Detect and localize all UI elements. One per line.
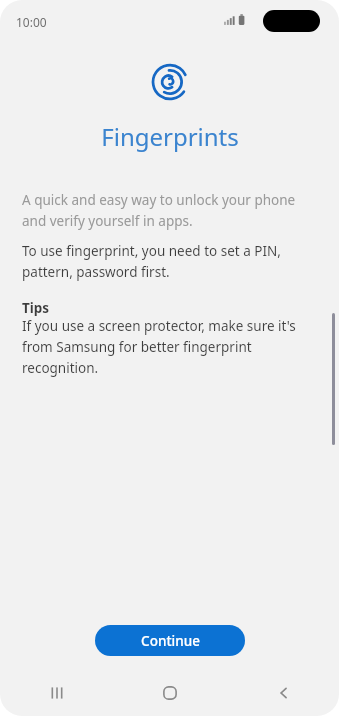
staticText: A quick and easy way to unlock your phon… xyxy=(22,191,311,230)
button[interactable]: Home xyxy=(113,670,226,716)
staticText: 10:00 xyxy=(16,14,47,30)
button[interactable]: Back xyxy=(226,670,339,716)
staticText: Tips xyxy=(22,299,50,317)
button[interactable]: Continue xyxy=(95,625,245,656)
staticText: Fingerprints xyxy=(101,120,239,153)
button[interactable]: Recent apps xyxy=(0,670,113,716)
staticText: Continue xyxy=(141,632,200,650)
staticText: If you use a screen protector, make sure… xyxy=(22,317,311,377)
staticText: To use fingerprint, you need to set a PI… xyxy=(22,242,311,281)
